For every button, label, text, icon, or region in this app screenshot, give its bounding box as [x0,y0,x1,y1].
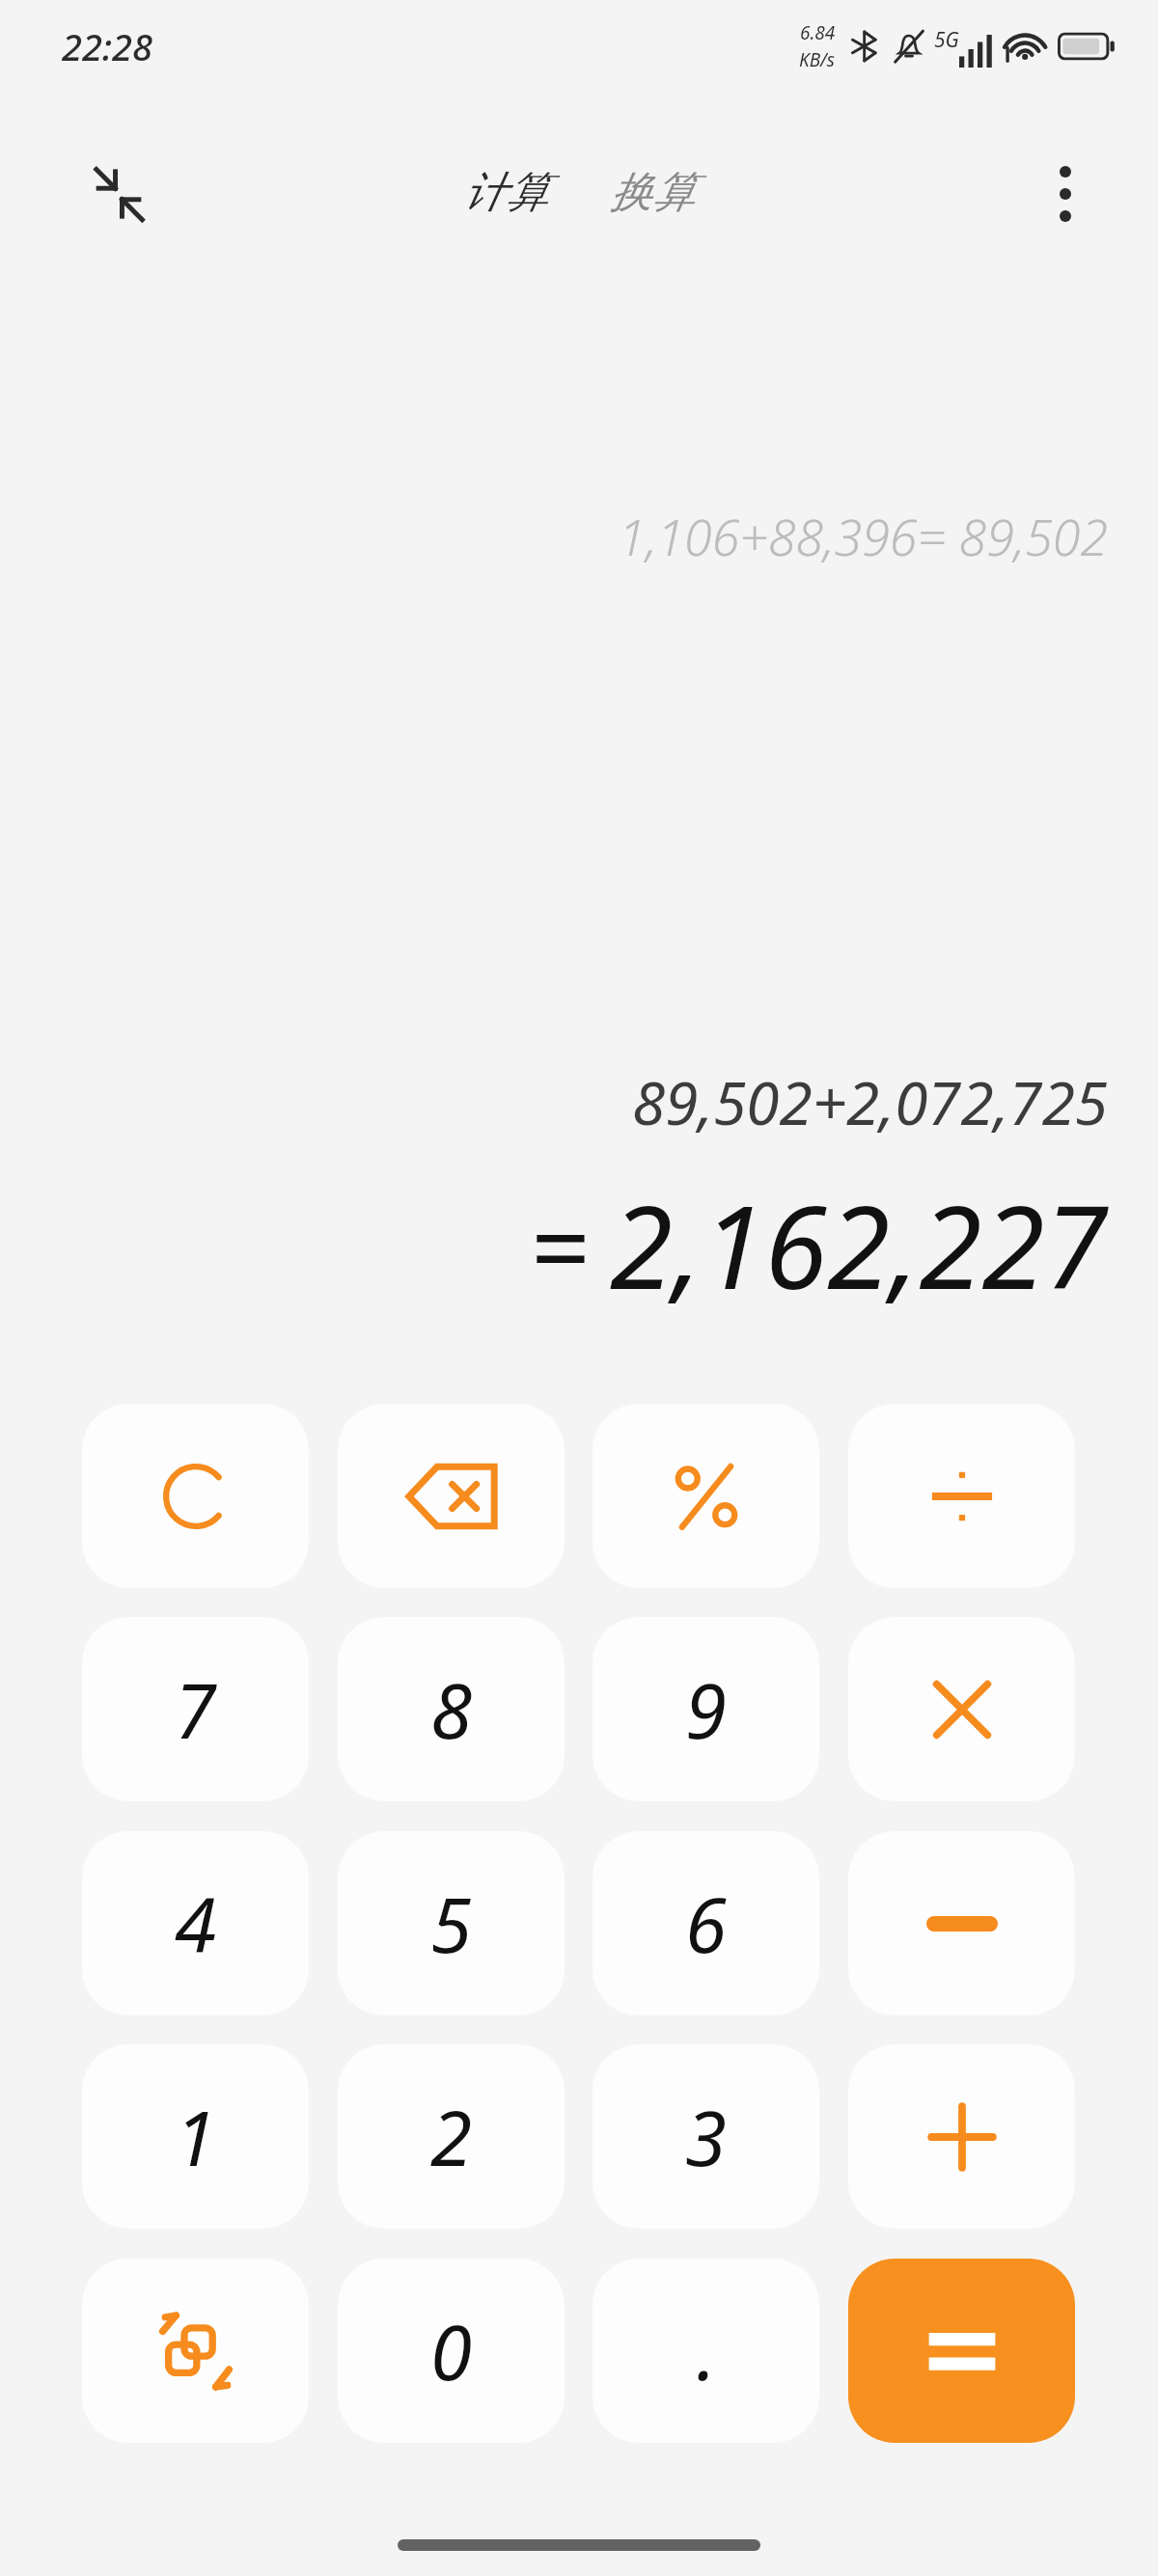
staticText: 22:28 [62,21,152,71]
button[interactable]: 5 [338,1831,565,2015]
button[interactable]: 3 [593,2044,819,2229]
staticText: = [529,1174,589,1316]
button[interactable]: 6 [593,1831,819,2015]
button[interactable]: . [593,2259,819,2443]
staticText: 3 [685,2086,727,2188]
button[interactable]: Equals [848,2259,1075,2443]
staticText: 6.84 [800,20,836,45]
staticText: 9 [685,1658,727,1761]
button[interactable]: 8 [338,1617,565,1801]
staticText: 1 [175,2086,216,2188]
button[interactable]: 计算 [450,156,562,229]
button[interactable]: Multiply [848,1617,1075,1801]
button[interactable]: 换算 [596,156,708,229]
button[interactable]: Clear [82,1404,309,1588]
button[interactable]: 1 [82,2044,309,2229]
staticText: 89,502+2,072,725 [631,1061,1108,1142]
button[interactable]: 2 [338,2044,565,2229]
button[interactable]: Collapse [77,152,160,235]
staticText: KB/s [799,47,836,72]
staticText: 4 [175,1873,216,1975]
button[interactable]: Backspace [338,1404,565,1588]
staticText: 7 [175,1658,216,1761]
staticText: 2,162,227 [610,1167,1108,1323]
staticText: 6 [685,1873,727,1975]
staticText: 0 [430,2300,472,2402]
staticText: 1,106+88,396= 89,502 [618,502,1108,570]
button[interactable]: 0 [338,2259,565,2443]
button[interactable]: Percent [593,1404,819,1588]
staticText: 5G [934,26,959,54]
button[interactable]: 7 [82,1617,309,1801]
button[interactable]: Divide [848,1404,1075,1588]
button[interactable]: Unit conversion [82,2259,309,2443]
staticText: . [697,2300,716,2402]
staticText: 5 [430,1873,472,1975]
staticText: 8 [430,1658,472,1761]
staticText: 2 [430,2086,472,2188]
staticText: 换算 [610,166,695,219]
button[interactable]: More options [1025,153,1106,234]
button[interactable]: 4 [82,1831,309,2015]
button[interactable]: Minus [848,1831,1075,2015]
button[interactable]: Plus [848,2044,1075,2229]
staticText: 计算 [463,166,548,219]
button[interactable]: 9 [593,1617,819,1801]
